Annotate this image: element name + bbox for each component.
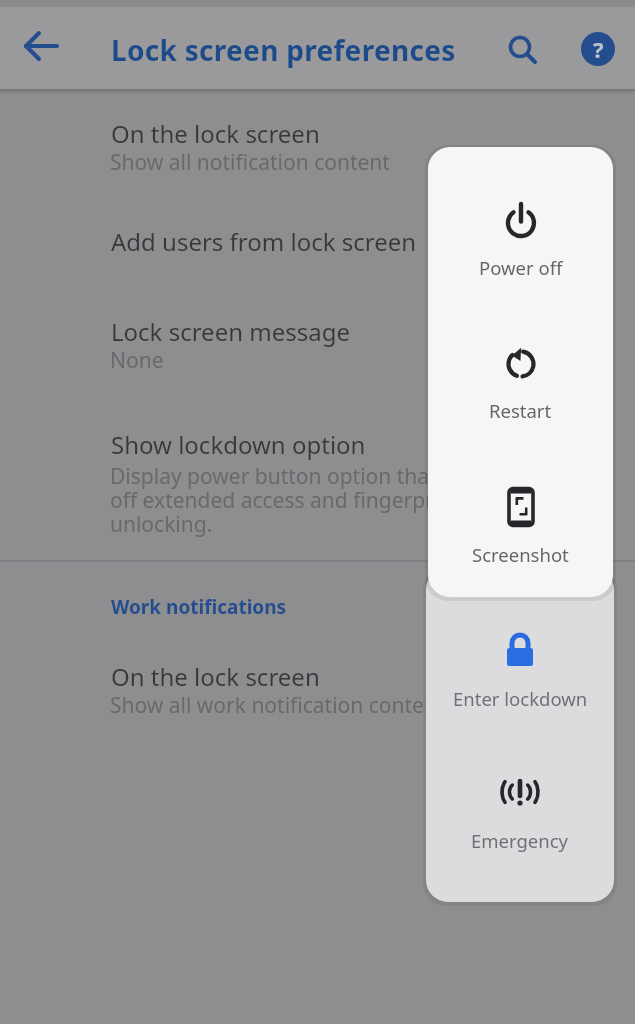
button[interactable]: Add users from lock screen bbox=[0, 212, 635, 282]
staticText: On the lock screen bbox=[111, 660, 320, 693]
staticText: Show all notification content bbox=[110, 148, 390, 177]
staticText: None bbox=[110, 346, 164, 375]
staticText: off extended access and fingerprint bbox=[110, 486, 460, 515]
button[interactable]: Lock screen message bbox=[0, 302, 635, 392]
staticText: Add users from lock screen bbox=[111, 225, 417, 258]
staticText: Work notifications bbox=[111, 594, 287, 620]
button[interactable]: Restart bbox=[428, 346, 613, 423]
staticText: unlocking. bbox=[110, 510, 213, 539]
staticText: Show all work notification content bbox=[110, 691, 445, 720]
button[interactable]: On the lock screen bbox=[0, 647, 635, 737]
button[interactable] bbox=[498, 25, 548, 75]
staticText: ? bbox=[593, 34, 604, 64]
button[interactable]: Power off bbox=[428, 203, 613, 280]
button[interactable]: Show lockdown option bbox=[0, 415, 635, 540]
button[interactable] bbox=[18, 22, 66, 70]
staticText: Lock screen message bbox=[111, 315, 350, 348]
staticText: Emergency bbox=[471, 828, 569, 853]
button[interactable]: Emergency bbox=[426, 772, 614, 853]
staticText: Screenshot bbox=[472, 542, 569, 567]
button[interactable]: Enter lockdown bbox=[426, 630, 614, 711]
staticText: Lock screen preferences bbox=[111, 31, 456, 69]
button[interactable]: ? bbox=[573, 24, 623, 74]
button[interactable]: Screenshot bbox=[428, 488, 613, 567]
staticText: Display power button option that turns bbox=[110, 462, 495, 491]
staticText: On the lock screen bbox=[111, 117, 320, 150]
staticText: Power off bbox=[479, 255, 563, 280]
button[interactable]: On the lock screen bbox=[0, 104, 635, 194]
staticText: Show lockdown option bbox=[111, 428, 366, 461]
staticText: Enter lockdown bbox=[453, 686, 588, 711]
staticText: Restart bbox=[489, 398, 552, 423]
